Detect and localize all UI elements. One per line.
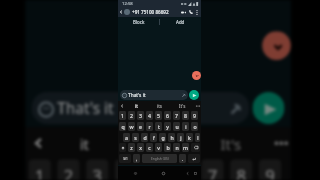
button[interactable]: c <box>146 143 153 152</box>
button[interactable]: Previous suggestion <box>118 101 125 110</box>
staticText: , <box>136 156 138 162</box>
button[interactable]: its <box>148 101 171 110</box>
button[interactable]: 1 <box>119 111 126 120</box>
button[interactable]: That's it <box>32 92 249 124</box>
staticText: 7 <box>175 112 178 119</box>
button[interactable]: 1 <box>28 159 51 180</box>
button[interactable]: Enter <box>188 154 200 163</box>
button[interactable]: 6 <box>172 159 195 180</box>
button[interactable]: Home <box>158 166 168 180</box>
button[interactable]: a <box>123 133 130 142</box>
staticText: 6 <box>166 112 169 119</box>
staticText: It's <box>179 103 186 109</box>
button[interactable]: its <box>121 127 195 156</box>
button[interactable]: 4 <box>146 111 153 120</box>
button[interactable]: 8 <box>182 111 189 120</box>
button[interactable]: Send <box>189 90 199 100</box>
staticText: Add <box>176 19 185 25</box>
button[interactable]: 4 <box>115 159 137 180</box>
button[interactable]: i <box>182 122 189 131</box>
staticText: v <box>157 144 160 151</box>
button[interactable]: z <box>128 143 135 152</box>
staticText: !#1 <box>123 157 128 161</box>
button[interactable]: x <box>137 143 144 152</box>
button[interactable]: Back <box>184 166 191 180</box>
button[interactable]: Scroll to bottom <box>192 71 201 80</box>
button[interactable]: q <box>119 122 126 131</box>
button[interactable]: 7 <box>201 159 224 180</box>
staticText: its <box>157 103 163 109</box>
staticText: 5 <box>157 112 160 119</box>
button[interactable]: That's it <box>120 90 188 100</box>
button[interactable]: n <box>173 143 180 152</box>
staticText: b <box>166 144 170 151</box>
button[interactable]: More options <box>194 7 200 17</box>
button[interactable]: l <box>195 133 200 142</box>
button[interactable]: d <box>141 133 148 142</box>
button[interactable]: Scroll to bottom <box>262 31 291 60</box>
staticText: 4 <box>121 162 131 180</box>
button[interactable]: Hide keyboard <box>131 166 140 180</box>
button[interactable]: j <box>177 133 184 142</box>
staticText: That's it <box>128 92 146 99</box>
button[interactable]: Keyboard settings <box>194 101 201 110</box>
button[interactable]: Send <box>252 92 284 124</box>
button[interactable]: Block <box>118 17 159 27</box>
button[interactable]: it <box>48 127 121 156</box>
button[interactable]: Previous suggestion <box>25 127 48 156</box>
staticText: s <box>134 134 137 141</box>
button[interactable]: 5 <box>144 159 166 180</box>
button[interactable]: Backspace <box>191 143 200 152</box>
button[interactable]: 3 <box>137 111 144 120</box>
staticText: f <box>153 134 155 141</box>
staticText: 3 <box>139 112 142 119</box>
button[interactable]: 8 <box>230 159 252 180</box>
button[interactable]: 7 <box>173 111 180 120</box>
button[interactable]: Video call <box>179 7 187 17</box>
button[interactable]: f <box>150 133 157 142</box>
button[interactable]: Space <box>142 154 177 163</box>
staticText: That's it <box>57 98 115 121</box>
button[interactable]: Shift <box>119 143 126 152</box>
button[interactable]: o <box>191 122 198 131</box>
staticText: 4 <box>148 112 151 119</box>
button[interactable]: v <box>155 143 162 152</box>
button[interactable]: e <box>137 122 144 131</box>
button[interactable]: 2 <box>57 159 80 180</box>
button[interactable]: 9 <box>259 159 281 180</box>
button[interactable]: , <box>133 154 140 163</box>
staticText: 8 <box>236 162 246 180</box>
button[interactable]: t <box>155 122 162 131</box>
button[interactable]: It's <box>171 101 194 110</box>
button[interactable]: !#1 <box>119 154 131 163</box>
button[interactable]: 5 <box>155 111 162 120</box>
button[interactable]: Keyboard settings <box>268 127 291 156</box>
button[interactable]: Recents <box>192 166 199 180</box>
button[interactable]: Back <box>118 7 124 17</box>
button[interactable]: it <box>125 101 148 110</box>
button[interactable]: 3 <box>86 159 108 180</box>
button[interactable]: m <box>182 143 189 152</box>
staticText: e <box>139 123 142 130</box>
button[interactable]: 9 <box>191 111 198 120</box>
button[interactable]: s <box>132 133 139 142</box>
staticText: u <box>175 123 179 130</box>
staticText: h <box>170 134 174 141</box>
button[interactable]: r <box>146 122 153 131</box>
button[interactable]: Add <box>160 17 201 27</box>
button[interactable]: h <box>168 133 175 142</box>
staticText: 9 <box>193 112 196 119</box>
button[interactable]: 6 <box>164 111 171 120</box>
staticText: 9 <box>265 162 275 180</box>
button[interactable]: It's <box>195 127 268 156</box>
button[interactable]: b <box>164 143 171 152</box>
button[interactable]: u <box>173 122 180 131</box>
button[interactable]: . <box>179 154 186 163</box>
button[interactable]: w <box>128 122 135 131</box>
button[interactable]: k <box>186 133 193 142</box>
button[interactable]: 2 <box>128 111 135 120</box>
staticText: 5 <box>150 162 160 180</box>
button[interactable]: g <box>159 133 166 142</box>
button[interactable]: Voice call <box>187 7 194 17</box>
button[interactable]: y <box>164 122 171 131</box>
